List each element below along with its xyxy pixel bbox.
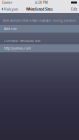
staticText: Edit (71, 6, 77, 11)
button[interactable]: http://yahoo.com (0, 44, 79, 52)
staticText: Carrier (2, 0, 12, 4)
staticText: Add site (4, 27, 17, 31)
staticText: Add websites that remain reachable durin… (3, 19, 77, 23)
staticText: Whitelisted Sites (26, 6, 53, 11)
button[interactable]: Halcyon (0, 5, 18, 13)
button[interactable]: Edit (71, 5, 79, 13)
button[interactable]: Add site (0, 25, 79, 32)
staticText: http://yahoo.com (4, 46, 31, 50)
staticText: CURRENTLY WHITELISTED SITES (4, 39, 40, 43)
staticText: 4:28 PM (35, 0, 48, 4)
staticText: Halcyon (4, 6, 18, 11)
